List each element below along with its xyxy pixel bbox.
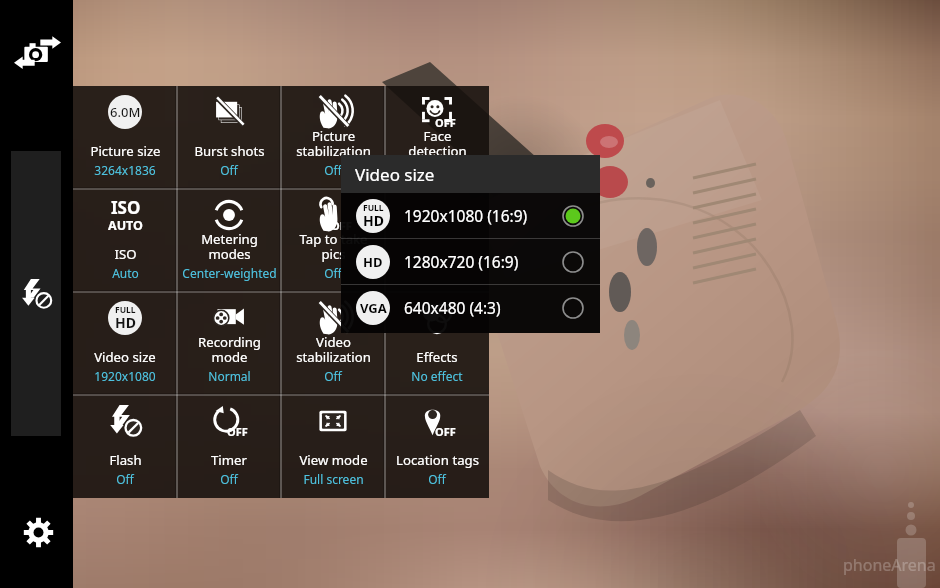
- staticText: 1920x1080 (16:9): [404, 205, 528, 226]
- staticText: ISO: [111, 196, 141, 219]
- staticText: 1280x720 (16:9): [404, 251, 519, 272]
- button[interactable]: View mode: [281, 395, 385, 498]
- staticText: 1920x1080: [94, 368, 156, 384]
- staticText: Picture stabilization: [296, 127, 371, 160]
- staticText: Off: [428, 162, 446, 178]
- staticText: AUTO: [108, 217, 143, 232]
- staticText: Flash: [109, 451, 142, 469]
- button[interactable]: Settings: [14, 508, 62, 556]
- staticText: OFF: [227, 424, 248, 439]
- staticText: HD: [363, 211, 384, 230]
- button[interactable]: OFF: [385, 395, 489, 498]
- staticText: Recording mode: [198, 333, 261, 366]
- button[interactable]: FULL: [73, 292, 177, 395]
- button[interactable]: Flash off: [11, 151, 61, 436]
- staticText: Off: [324, 368, 342, 384]
- staticText: Off: [220, 162, 238, 178]
- button[interactable]: Video stabilization: [281, 292, 385, 395]
- staticText: Face detection: [408, 127, 467, 160]
- staticText: Off: [220, 471, 238, 487]
- staticText: Video stabilization: [296, 333, 371, 366]
- staticText: Effects: [416, 348, 458, 366]
- staticText: OFF: [435, 424, 456, 439]
- staticText: Metering modes: [201, 230, 258, 263]
- button[interactable]: Switch camera: [8, 31, 66, 77]
- staticText: Tap to take pics: [299, 230, 368, 263]
- button[interactable]: Flash: [73, 395, 177, 498]
- button[interactable]: Picture stabilization: [281, 86, 385, 189]
- button[interactable]: OFF: [281, 189, 385, 292]
- staticText: Off: [116, 471, 134, 487]
- button[interactable]: FULL: [341, 193, 600, 238]
- button[interactable]: Burst shots: [177, 86, 281, 189]
- staticText: VGA: [360, 299, 387, 317]
- staticText: Off: [324, 265, 342, 281]
- button[interactable]: OFF: [177, 395, 281, 498]
- staticText: Full screen: [303, 471, 364, 487]
- staticText: FULL: [363, 202, 384, 214]
- button[interactable]: Recording mode: [177, 292, 281, 395]
- button[interactable]: VGA: [341, 285, 600, 330]
- staticText: Video size: [94, 348, 156, 366]
- staticText: OFF: [331, 218, 352, 233]
- staticText: HD: [363, 253, 383, 271]
- staticText: FULL: [115, 304, 136, 316]
- staticText: OFF: [435, 115, 456, 130]
- staticText: 640x480 (4:3): [404, 297, 501, 318]
- button[interactable]: HD: [341, 239, 600, 284]
- staticText: 6.0M: [110, 103, 141, 121]
- staticText: Off: [428, 471, 446, 487]
- staticText: No effect: [411, 368, 463, 384]
- staticText: Location tags: [396, 451, 479, 469]
- staticText: View mode: [299, 451, 368, 469]
- staticText: ISO: [114, 245, 137, 263]
- button[interactable]: ISO: [73, 189, 177, 292]
- staticText: 3264x1836: [94, 162, 156, 178]
- staticText: Picture size: [90, 142, 161, 160]
- staticText: Off: [324, 162, 342, 178]
- staticText: Video size: [355, 163, 435, 186]
- button[interactable]: Effects: [385, 292, 489, 395]
- staticText: Timer: [211, 451, 247, 469]
- button[interactable]: 6.0M: [73, 86, 177, 189]
- staticText: Burst shots: [194, 142, 265, 160]
- staticText: Normal: [208, 368, 251, 384]
- button[interactable]: OFF: [385, 86, 489, 189]
- button[interactable]: Metering modes: [177, 189, 281, 292]
- staticText: phoneArena: [843, 554, 936, 576]
- staticText: HD: [115, 313, 136, 332]
- staticText: Center-weighted: [182, 265, 277, 281]
- staticText: Auto: [112, 265, 139, 281]
